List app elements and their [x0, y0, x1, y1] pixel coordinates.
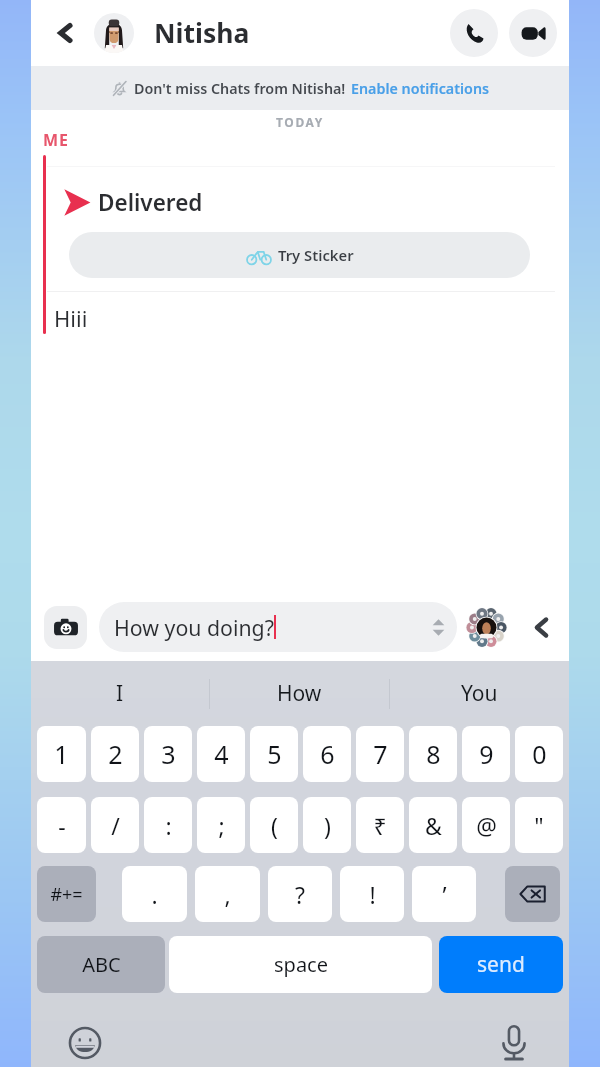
staticText: TODAY — [276, 114, 324, 130]
button[interactable]: Video call — [509, 9, 557, 57]
button[interactable]: Try Sticker — [69, 232, 530, 278]
button[interactable]: 4 — [197, 726, 245, 782]
staticText: - — [58, 810, 66, 841]
staticText: @ — [476, 810, 497, 841]
staticText: 3 — [161, 737, 176, 771]
button[interactable]: You — [390, 661, 569, 726]
button[interactable]: ) — [303, 797, 351, 853]
button[interactable]: : — [144, 797, 192, 853]
button[interactable]: ( — [250, 797, 298, 853]
staticText: 7 — [373, 737, 388, 771]
button[interactable]: ; — [197, 797, 245, 853]
staticText: ) — [324, 810, 331, 841]
staticText: I — [116, 679, 124, 708]
button[interactable]: , — [195, 866, 260, 922]
staticText: Try Sticker — [278, 245, 354, 265]
button[interactable]: space — [169, 936, 432, 993]
staticText: How — [277, 679, 322, 708]
button[interactable]: 0 — [515, 726, 563, 782]
staticText: . — [151, 879, 158, 910]
button[interactable]: Camera — [44, 606, 87, 649]
staticText: ! — [369, 879, 376, 910]
staticText: How you doing? — [114, 613, 274, 642]
button[interactable]: 3 — [144, 726, 192, 782]
staticText: 8 — [426, 737, 441, 771]
button[interactable]: send — [439, 936, 563, 993]
button[interactable]: - — [37, 797, 86, 853]
staticText: 0 — [532, 737, 547, 771]
button[interactable]: I — [31, 661, 209, 726]
button[interactable]: Friend profile — [464, 605, 508, 649]
button[interactable]: 2 — [91, 726, 139, 782]
button[interactable]: Profile — [94, 13, 134, 53]
button[interactable]: ! — [340, 866, 404, 922]
button[interactable]: Delivered — [31, 166, 569, 291]
button[interactable]: How — [210, 661, 389, 726]
button[interactable]: Emoji — [61, 1019, 109, 1067]
staticText: Hiii — [54, 303, 88, 333]
button[interactable]: How you doing? — [99, 602, 457, 652]
staticText: & — [425, 810, 442, 841]
button[interactable]: 5 — [250, 726, 298, 782]
button[interactable]: Call — [450, 9, 498, 57]
button[interactable]: Don't miss Chats from Nitisha! — [31, 66, 569, 110]
button[interactable]: 1 — [37, 726, 86, 782]
button[interactable]: ABC — [37, 936, 165, 993]
staticText: Enable notifications — [351, 79, 490, 98]
button[interactable]: Back — [45, 12, 87, 54]
staticText: 4 — [214, 737, 229, 771]
staticText: You — [461, 679, 498, 708]
button[interactable]: 6 — [303, 726, 351, 782]
button[interactable]: / — [91, 797, 139, 853]
staticText: 9 — [479, 737, 494, 771]
staticText: ? — [295, 879, 305, 910]
staticText: #+= — [50, 882, 83, 907]
staticText: Don't miss Chats from Nitisha! — [134, 79, 346, 98]
staticText: 6 — [320, 737, 335, 771]
staticText: ₹ — [373, 810, 387, 841]
button[interactable]: 8 — [409, 726, 457, 782]
button[interactable]: Collapse — [521, 607, 561, 647]
staticText: ( — [271, 810, 278, 841]
staticText: : — [165, 810, 172, 841]
button[interactable]: Dictate — [490, 1019, 538, 1067]
button[interactable]: " — [515, 797, 563, 853]
button[interactable]: Backspace — [505, 866, 560, 922]
staticText: , — [224, 879, 231, 910]
staticText: ; — [218, 810, 225, 841]
button[interactable]: 9 — [462, 726, 510, 782]
staticText: Delivered — [98, 187, 203, 217]
staticText: space — [274, 951, 328, 978]
button[interactable]: . — [122, 866, 187, 922]
staticText: send — [477, 950, 525, 979]
button[interactable]: @ — [462, 797, 510, 853]
staticText: 1 — [54, 737, 69, 771]
staticText: 2 — [108, 737, 123, 771]
button[interactable]: ₹ — [356, 797, 404, 853]
button[interactable]: ’ — [412, 866, 476, 922]
button[interactable]: 7 — [356, 726, 404, 782]
staticText: 5 — [267, 737, 282, 771]
staticText: " — [534, 810, 544, 841]
staticText: Nitisha — [154, 15, 250, 51]
button[interactable]: #+= — [37, 866, 96, 922]
staticText: ABC — [82, 951, 121, 978]
staticText: / — [111, 810, 120, 841]
button[interactable]: & — [409, 797, 457, 853]
button[interactable]: ? — [268, 866, 332, 922]
staticText: ’ — [442, 879, 447, 910]
staticText: ME — [43, 129, 69, 151]
